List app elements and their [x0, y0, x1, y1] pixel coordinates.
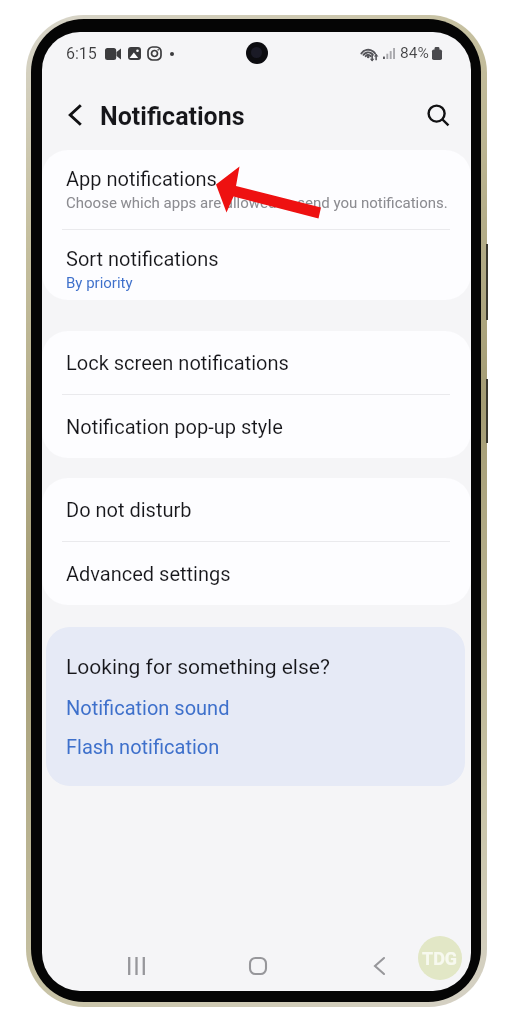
staticText: Notification sound — [66, 696, 230, 719]
staticText: Do not disturb — [66, 498, 192, 521]
staticText: Looking for something else? — [66, 655, 330, 680]
button[interactable]: Back — [53, 93, 97, 137]
staticText: Choose which apps are allowed to send yo… — [66, 194, 448, 212]
staticText: TDG — [422, 948, 458, 969]
button[interactable]: Flash notification — [66, 735, 220, 758]
button[interactable]: Notification pop-up style — [42, 395, 471, 458]
staticText: Notification pop-up style — [66, 415, 283, 438]
button[interactable]: Sort notifications — [42, 230, 471, 300]
button[interactable]: Search — [417, 94, 461, 138]
staticText: Sort notifications — [66, 247, 219, 270]
button[interactable]: Lock screen notifications — [42, 331, 471, 394]
staticText: Notifications — [100, 102, 245, 131]
button[interactable]: App notifications — [42, 150, 471, 229]
button[interactable]: Notification sound — [66, 696, 230, 719]
staticText: 6:15 — [66, 44, 97, 63]
button[interactable]: Back — [341, 934, 417, 991]
staticText: 84% — [400, 44, 429, 62]
staticText: Flash notification — [66, 735, 220, 758]
button[interactable]: Recents — [98, 934, 174, 991]
button[interactable]: Home — [220, 934, 296, 991]
button[interactable]: Advanced settings — [42, 542, 471, 605]
staticText: App notifications — [66, 167, 217, 190]
button[interactable]: Do not disturb — [42, 478, 471, 541]
staticText: Lock screen notifications — [66, 351, 289, 374]
staticText: Advanced settings — [66, 562, 231, 585]
staticText: By priority — [66, 274, 133, 292]
